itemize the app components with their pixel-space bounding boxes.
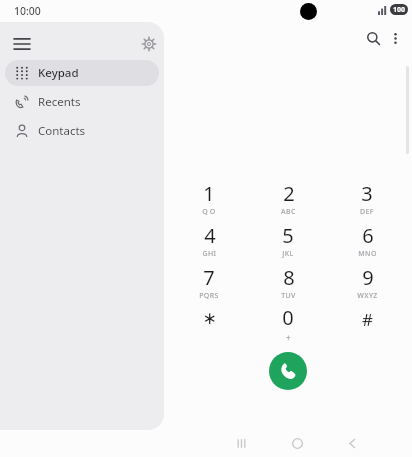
button[interactable]: 6	[338, 219, 396, 259]
button[interactable]: 0	[259, 301, 317, 341]
button[interactable]: 4	[180, 219, 238, 259]
staticText: DEF	[360, 207, 374, 217]
staticText: Recents	[38, 94, 81, 110]
button[interactable]: #	[338, 301, 396, 341]
button[interactable]: 2	[259, 177, 317, 217]
button[interactable]: 3	[338, 177, 396, 217]
button[interactable]: 1	[180, 177, 238, 217]
button[interactable]: Call	[269, 352, 307, 390]
staticText: 3	[361, 180, 373, 207]
staticText: Q O	[202, 207, 216, 217]
staticText: 6	[362, 222, 374, 249]
staticText: WXYZ	[357, 291, 378, 301]
button[interactable]: 8	[259, 261, 317, 301]
staticText: GHI	[202, 249, 217, 259]
button[interactable]: Settings	[133, 28, 164, 60]
staticText: #	[362, 308, 373, 331]
button[interactable]: Search	[359, 24, 387, 52]
staticText: 7	[203, 264, 215, 291]
staticText: 9	[362, 264, 374, 291]
button[interactable]: Keypad	[5, 60, 159, 86]
staticText: 10:00	[14, 4, 41, 18]
button[interactable]: Home	[284, 430, 310, 456]
staticText: PQRS	[199, 291, 219, 301]
button[interactable]: Recent apps	[228, 430, 254, 456]
staticText: 2	[283, 180, 295, 207]
staticText: 4	[204, 222, 216, 249]
staticText: ABC	[281, 207, 296, 217]
button[interactable]: Recents	[5, 89, 159, 115]
staticText: 8	[283, 264, 295, 291]
staticText: Contacts	[38, 123, 86, 139]
button[interactable]: 7	[180, 261, 238, 301]
button[interactable]: Back	[339, 430, 365, 456]
staticText: +	[286, 332, 291, 341]
button[interactable]: Contacts	[5, 118, 159, 144]
button[interactable]: 5	[259, 219, 317, 259]
staticText: MNO	[358, 249, 377, 259]
staticText: 100	[393, 5, 406, 15]
staticText: 1	[203, 180, 215, 207]
button[interactable]: ∗	[180, 301, 238, 341]
button[interactable]: Open navigation menu	[6, 28, 38, 60]
button[interactable]: More options	[381, 24, 409, 52]
button[interactable]: 9	[338, 261, 396, 301]
staticText: ∗	[202, 308, 217, 328]
staticText: 0	[282, 304, 294, 331]
staticText: Keypad	[38, 65, 79, 81]
staticText: 5	[282, 222, 294, 249]
staticText: TUV	[281, 291, 296, 301]
staticText: JKL	[282, 249, 294, 259]
